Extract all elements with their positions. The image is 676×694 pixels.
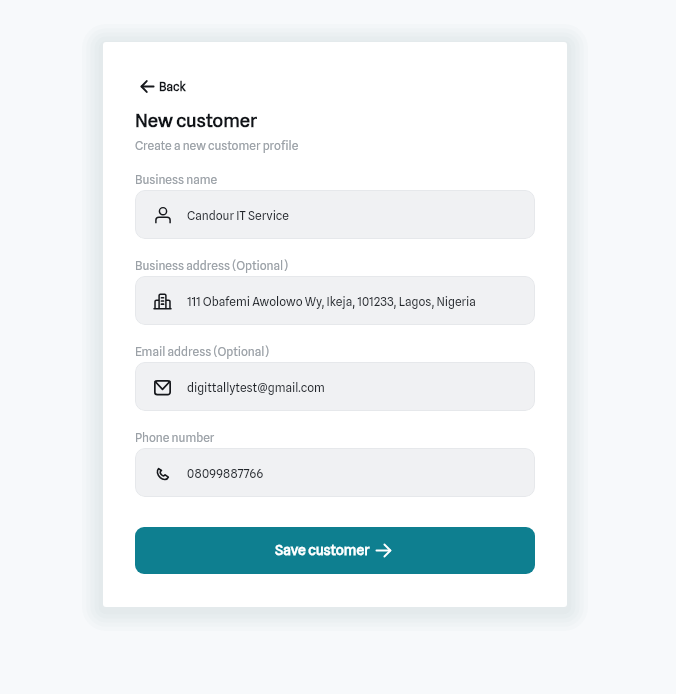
staticText: digittallytest@gmail.com [187,380,325,394]
staticText: Phone number [135,430,215,444]
staticText: Back [159,79,186,93]
staticText: Business address (Optional) [135,258,288,272]
button[interactable]: digittallytest@gmail.com [135,362,535,411]
staticText: 08099887766 [187,466,264,480]
staticText: Business name [135,172,218,186]
button[interactable]: Save customer [135,527,535,574]
staticText: 111 Obafemi Awolowo Wy, Ikeja, 101233, L… [187,294,476,308]
staticText: Save customer [275,542,370,559]
button[interactable]: Back [139,76,188,96]
staticText: Candour IT Service [187,208,289,222]
staticText: Email address (Optional) [135,344,270,358]
button[interactable]: 111 Obafemi Awolowo Wy, Ikeja, 101233, L… [135,276,535,325]
button[interactable]: Candour IT Service [135,190,535,239]
button[interactable]: 08099887766 [135,448,535,497]
staticText: Create a new customer profile [135,138,299,152]
staticText: New customer [135,109,258,131]
